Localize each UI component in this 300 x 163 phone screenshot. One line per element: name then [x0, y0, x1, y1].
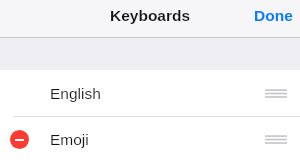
button[interactable]: English	[0, 70, 300, 116]
staticText: English	[50, 85, 101, 102]
button[interactable]: Remove keyboard	[10, 130, 29, 149]
button[interactable]: Reorder	[265, 87, 287, 99]
staticText: Keyboards	[110, 7, 191, 24]
button[interactable]: Reorder	[265, 133, 287, 145]
staticText: Emoji	[50, 131, 89, 148]
staticText: Done	[254, 7, 293, 24]
button[interactable]: Done	[247, 4, 300, 27]
button[interactable]: Remove keyboard	[0, 117, 300, 163]
